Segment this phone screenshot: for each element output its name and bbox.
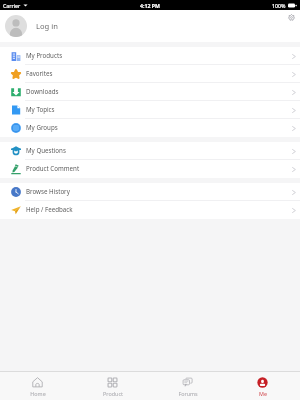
staticText: 100% [272,2,286,9]
button[interactable]: Home [0,372,75,400]
button[interactable]: Settings [284,10,298,24]
staticText: Downloads [26,87,59,95]
staticText: My Groups [26,123,58,131]
button[interactable]: Me [225,372,300,400]
staticText: Log in [36,21,58,31]
button[interactable]: Product [75,372,150,400]
staticText: Product [103,390,123,397]
staticText: Me [259,390,267,397]
button[interactable]: Downloads [0,83,300,101]
staticText: My Questions [26,146,66,154]
button[interactable]: My Questions [0,142,300,160]
button[interactable]: My Groups [0,119,300,137]
staticText: Carrier [3,2,21,9]
staticText: 4:12 PM [140,2,160,9]
staticText: Favorites [26,69,53,77]
button[interactable]: Product Comment [0,160,300,178]
staticText: My Products [26,51,63,59]
button[interactable]: My Topics [0,101,300,119]
staticText: Help / Feedback [26,205,73,213]
button[interactable]: Favorites [0,65,300,83]
staticText: Product Comment [26,164,80,172]
button[interactable]: Help / Feedback [0,201,300,219]
staticText: Browse History [26,187,70,195]
staticText: Forums [178,390,198,397]
staticText: My Topics [26,105,55,113]
button[interactable]: Forums [150,372,225,400]
button[interactable]: Browse History [0,183,300,201]
staticText: Home [30,390,46,397]
button[interactable]: My Products [0,47,300,65]
button[interactable]: Avatar [5,15,27,37]
